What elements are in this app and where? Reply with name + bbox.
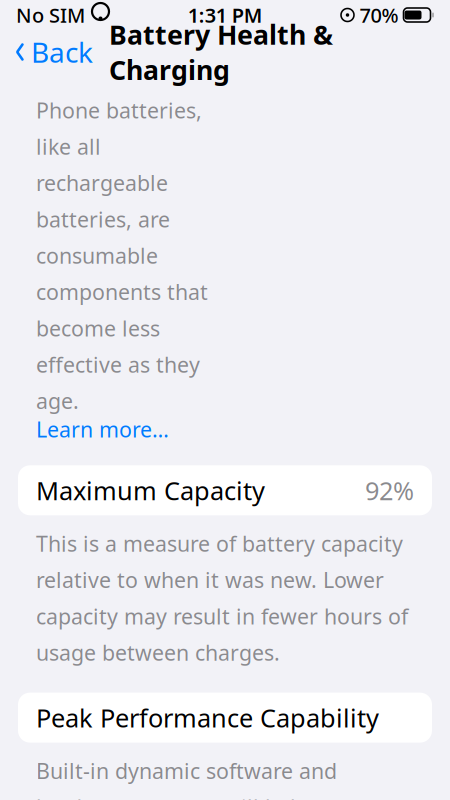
staticText: 92%: [365, 473, 414, 507]
staticText: Phone batteries, like all rechargeable b…: [36, 96, 208, 415]
button[interactable]: Learn more…: [36, 415, 169, 443]
staticText: Maximum Capacity: [36, 473, 265, 507]
button[interactable]: Back: [0, 27, 93, 77]
staticText: Built-in dynamic software and hardware s…: [36, 757, 393, 800]
staticText: Battery Health & Charging: [109, 17, 333, 87]
staticText: 70%: [359, 2, 398, 28]
staticText: Learn more…: [36, 415, 169, 443]
staticText: This is a measure of battery capacity re…: [36, 529, 408, 667]
staticText: Peak Performance Capability: [36, 701, 379, 734]
staticText: Back: [31, 33, 93, 71]
staticText: No SIM: [16, 2, 85, 28]
staticText: 1:31 PM: [188, 2, 263, 28]
